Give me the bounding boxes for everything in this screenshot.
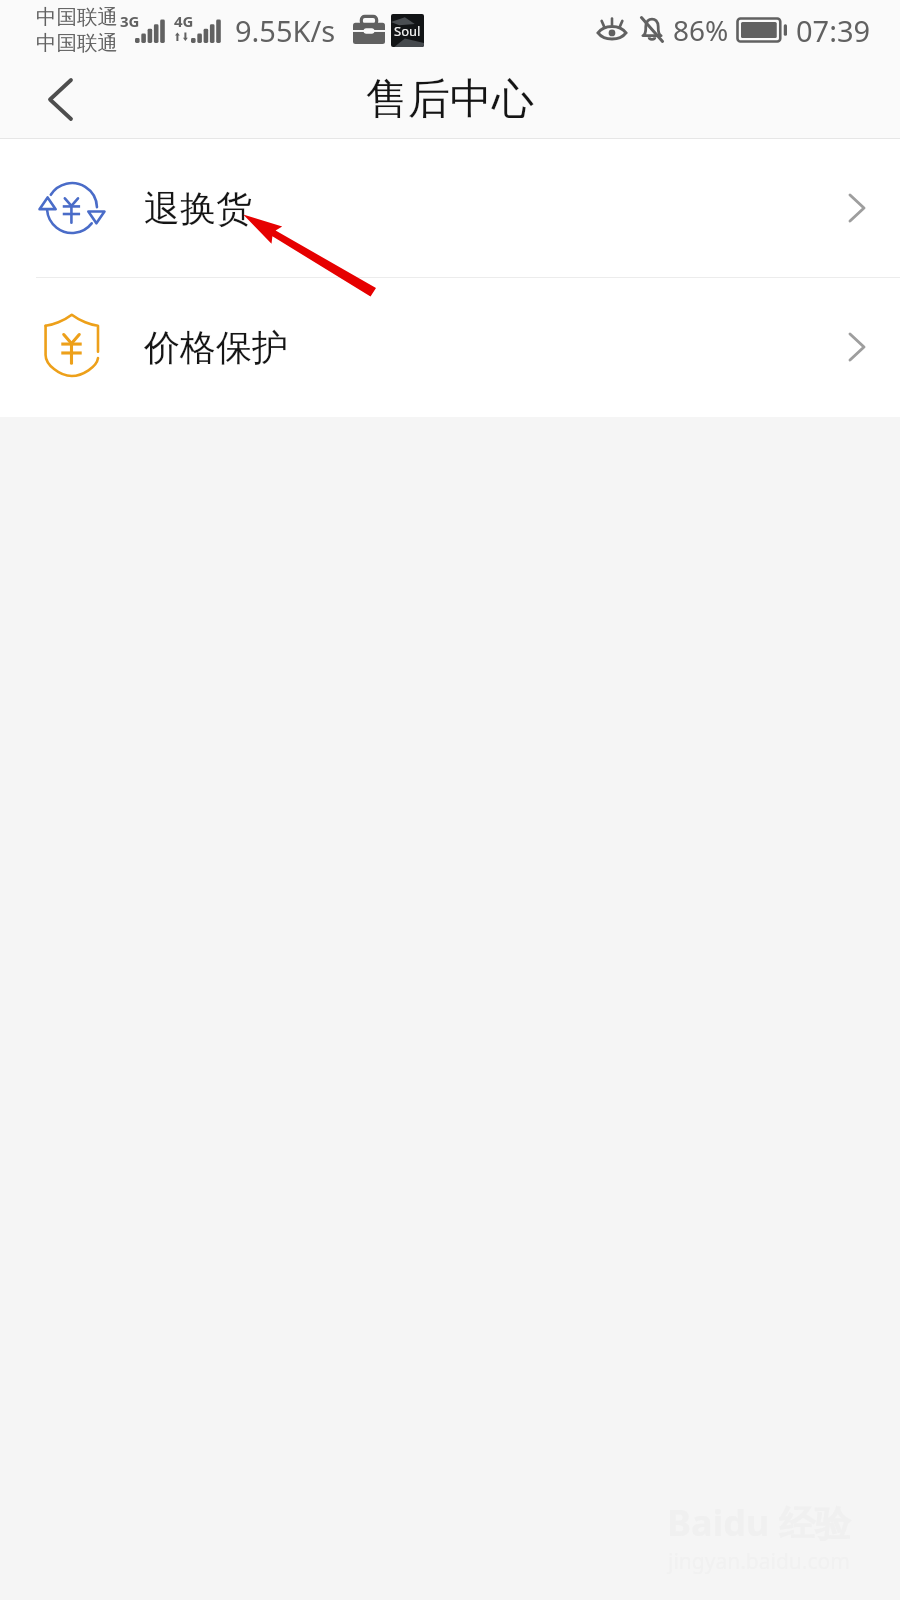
button[interactable]: 价格保护 (0, 278, 900, 416)
staticText: 退换货 (144, 186, 252, 231)
button[interactable]: 退换货 (0, 139, 900, 277)
staticText: 售后中心 (366, 73, 534, 126)
staticText: 中国联通 (36, 30, 118, 56)
staticText: 4G (174, 11, 194, 31)
staticText: 86% (673, 11, 729, 49)
staticText: Soul (394, 22, 421, 40)
staticText: 07:39 (796, 11, 871, 50)
button[interactable]: Back (0, 60, 120, 138)
staticText: 中国联通 (36, 4, 118, 30)
staticText: 3G (120, 11, 140, 31)
staticText: 价格保护 (144, 325, 288, 370)
staticText: 9.55K/s (235, 11, 336, 50)
